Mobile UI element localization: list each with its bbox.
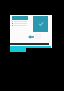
button[interactable] (12, 24, 28, 26)
button[interactable] (12, 22, 28, 24)
button[interactable]: Done (33, 16, 48, 32)
button[interactable] (12, 20, 28, 22)
